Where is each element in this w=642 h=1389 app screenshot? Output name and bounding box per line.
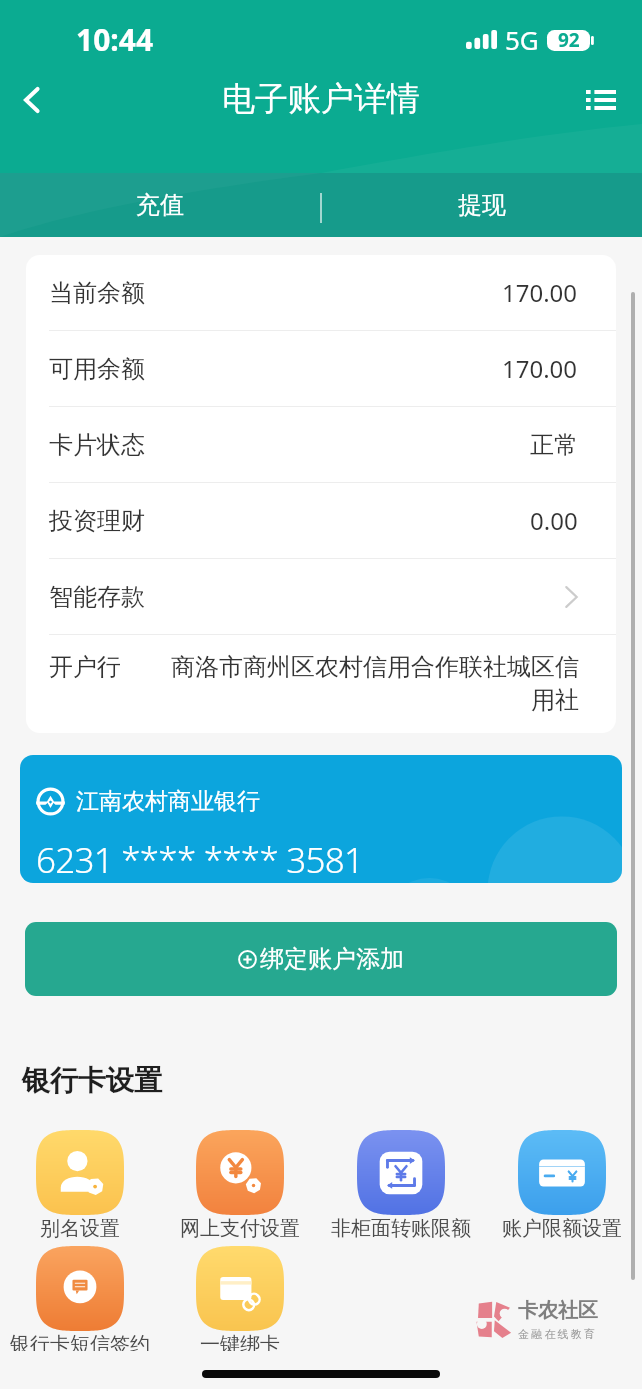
staticText: 开户行 xyxy=(49,652,121,682)
button[interactable]: 一键绑卡 xyxy=(160,1246,320,1351)
staticText: 别名设置 xyxy=(40,1216,120,1241)
staticText: 0.00 xyxy=(530,504,578,537)
staticText: 正常 xyxy=(530,430,578,460)
button[interactable]: 银行卡短信签约 xyxy=(0,1246,160,1351)
staticText: 可用余额 xyxy=(49,354,145,384)
staticText: 170.00 xyxy=(502,276,578,309)
staticText: 170.00 xyxy=(502,352,578,385)
button[interactable]: Menu xyxy=(570,69,632,131)
button[interactable]: 账户限额设置 xyxy=(481,1130,642,1241)
staticText: 投资理财 xyxy=(49,506,145,536)
staticText: 一键绑卡 xyxy=(200,1332,280,1351)
staticText: 银行卡短信签约 xyxy=(10,1332,150,1351)
button[interactable]: Back xyxy=(1,69,63,131)
staticText: 92 xyxy=(558,27,580,53)
button[interactable]: 别名设置 xyxy=(0,1130,160,1241)
staticText: 银行卡设置 xyxy=(22,1063,162,1098)
staticText: 6231 **** **** 3581 xyxy=(36,836,364,883)
button[interactable]: 可用余额 xyxy=(49,331,616,406)
button[interactable]: 智能存款 xyxy=(49,559,616,634)
button[interactable]: 投资理财 xyxy=(49,483,616,558)
staticText: 电子账户详情 xyxy=(222,78,420,120)
staticText: 绑定账户添加 xyxy=(260,944,404,974)
staticText: 卡片状态 xyxy=(49,430,145,460)
button[interactable]: 提现 xyxy=(322,173,642,237)
staticText: 10:44 xyxy=(76,19,154,60)
staticText: 5G xyxy=(505,22,539,57)
staticText: 充值 xyxy=(136,190,184,220)
button[interactable]: 充值 xyxy=(0,173,320,237)
button[interactable]: 绑定账户添加 xyxy=(25,922,617,996)
staticText: 网上支付设置 xyxy=(180,1216,300,1241)
button[interactable]: 当前余额 xyxy=(49,255,616,330)
staticText: 提现 xyxy=(458,190,506,220)
staticText: 江南农村商业银行 xyxy=(76,787,260,816)
staticText: 智能存款 xyxy=(49,582,145,612)
staticText: 账户限额设置 xyxy=(502,1216,622,1241)
staticText: 商洛市商州区农村信用合作联社城区信 用社 xyxy=(145,652,579,715)
staticText: 非柜面转账限额 xyxy=(331,1216,471,1241)
button[interactable]: 江南农村商业银行 xyxy=(20,755,622,883)
staticText: 当前余额 xyxy=(49,278,145,308)
staticText: 金融在线教育 xyxy=(518,1327,598,1341)
button[interactable]: 卡片状态 xyxy=(49,407,616,482)
button[interactable]: 非柜面转账限额 xyxy=(320,1130,481,1241)
button[interactable]: 网上支付设置 xyxy=(160,1130,320,1241)
staticText: 卡农社区 xyxy=(518,1298,598,1323)
